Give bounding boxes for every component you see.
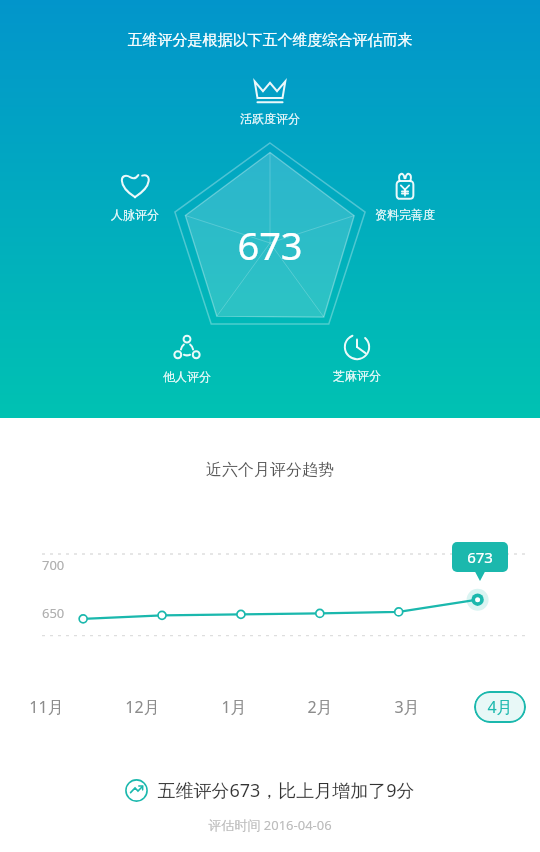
- staticText: 650: [42, 604, 86, 622]
- button[interactable]: 1月: [214, 690, 254, 724]
- staticText: 评估时间 2016-04-06: [0, 816, 540, 834]
- staticText: 五维评分673，比上月增加了9分: [157, 778, 415, 803]
- button[interactable]: 4月: [474, 691, 526, 723]
- button[interactable]: 人脉评分: [90, 170, 180, 222]
- button[interactable]: 他人评分: [142, 334, 232, 384]
- staticText: 资料完善度: [375, 207, 435, 222]
- other: 资料完善度: [388, 168, 422, 202]
- other: 人脉评分: [118, 170, 152, 202]
- button[interactable]: 12月: [118, 690, 167, 724]
- staticText: 673: [467, 547, 493, 567]
- staticText: 芝麻评分: [333, 368, 381, 383]
- other: 他人评分: [171, 334, 203, 364]
- button[interactable]: 资料完善度: [360, 168, 450, 222]
- button[interactable]: 3月: [387, 690, 427, 724]
- button[interactable]: 11月: [22, 690, 71, 724]
- staticText: 12月: [125, 696, 160, 718]
- button[interactable]: 673: [452, 542, 508, 572]
- staticText: 700: [42, 556, 86, 574]
- other: 芝麻评分: [341, 331, 373, 363]
- staticText: 673: [0, 219, 540, 271]
- staticText: 他人评分: [163, 369, 211, 384]
- staticText: 五维评分是根据以下五个维度综合评估而来: [0, 31, 540, 50]
- other: 活跃度评分: [252, 78, 288, 106]
- button[interactable]: 芝麻评分: [312, 331, 402, 383]
- staticText: 活跃度评分: [240, 111, 300, 126]
- button[interactable]: 活跃度评分: [225, 78, 315, 126]
- button[interactable]: 2月: [300, 690, 340, 724]
- staticText: 11月: [29, 696, 64, 718]
- staticText: 2月: [307, 696, 333, 718]
- staticText: 1月: [221, 696, 247, 718]
- staticText: 人脉评分: [111, 207, 159, 222]
- staticText: 近六个月评分趋势: [0, 460, 540, 480]
- staticText: 4月: [487, 696, 513, 718]
- staticText: 3月: [394, 696, 420, 718]
